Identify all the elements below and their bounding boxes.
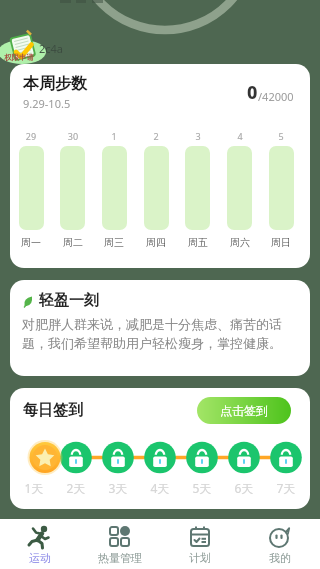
staticText: 周五 [183, 236, 213, 249]
staticText: 对肥胖人群来说，减肥是十分焦虑、痛苦的话 [22, 316, 282, 332]
staticText: 3 [183, 130, 213, 142]
staticText: 周二 [58, 236, 88, 249]
staticText: 7天 [270, 480, 302, 496]
staticText: 2天 [60, 480, 92, 496]
staticText: 轻盈一刻 [39, 291, 99, 310]
staticText: 权限申请 [4, 53, 34, 62]
button[interactable] [0, 32, 48, 64]
staticText: 周四 [141, 236, 171, 249]
staticText: 周日 [266, 236, 296, 249]
staticText: 4天 [144, 480, 176, 496]
staticText: 0 [247, 80, 258, 105]
staticText: 5天 [186, 480, 218, 496]
staticText: 周六 [225, 236, 255, 249]
staticText: 周三 [99, 236, 129, 249]
staticText: 29 [16, 130, 46, 142]
staticText: 本周步数 [23, 74, 87, 94]
staticText: 1 [99, 130, 129, 142]
staticText: 30 [58, 130, 88, 142]
staticText: 每日签到 [23, 401, 83, 420]
staticText: 热量管理 [98, 551, 142, 565]
staticText: 4 [225, 130, 255, 142]
button[interactable]: 点击签到 [197, 397, 291, 424]
staticText: 计划 [189, 551, 211, 565]
staticText: 我的 [269, 551, 291, 565]
staticText: 题，我们希望帮助用户轻松瘦身，掌控健康。 [22, 335, 282, 351]
staticText: 3天 [102, 480, 134, 496]
staticText: 9.29-10.5 [23, 96, 71, 111]
button[interactable]: 我的 [240, 519, 320, 569]
button[interactable]: 热量管理 [80, 519, 160, 569]
button[interactable]: 运动 [0, 519, 80, 569]
staticText: 运动 [29, 551, 51, 565]
staticText: 1天 [18, 480, 50, 496]
staticText: 5 [266, 130, 296, 142]
button[interactable]: 计划 [160, 519, 240, 569]
staticText: 周一 [16, 236, 46, 249]
staticText: 6天 [228, 480, 260, 496]
staticText: 2 [141, 130, 171, 142]
staticText: 点击签到 [220, 403, 268, 418]
staticText: /42000 [258, 89, 294, 104]
staticText: 2c4a [39, 41, 64, 56]
